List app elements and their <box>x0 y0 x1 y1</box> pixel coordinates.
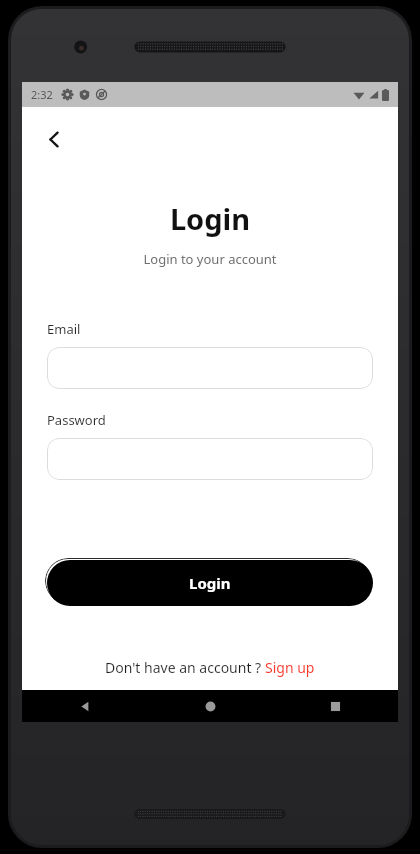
staticText: Login to your account <box>22 250 398 268</box>
staticText: Password <box>47 411 106 429</box>
staticText: Don't have an account ? <box>105 658 265 677</box>
button[interactable]: Login <box>47 560 373 606</box>
staticText: Login <box>189 573 231 593</box>
button[interactable]: Recent apps <box>273 690 398 722</box>
button[interactable]: Back <box>34 119 74 159</box>
button[interactable]: Home <box>148 690 273 722</box>
button[interactable]: Back <box>22 690 148 722</box>
staticText: Sign up <box>265 658 315 677</box>
button[interactable] <box>47 347 373 389</box>
button[interactable]: Sign up <box>265 658 315 677</box>
staticText: Login <box>22 199 398 238</box>
button[interactable] <box>47 438 373 480</box>
staticText: 2:32 <box>31 87 53 102</box>
staticText: Email <box>47 320 81 338</box>
